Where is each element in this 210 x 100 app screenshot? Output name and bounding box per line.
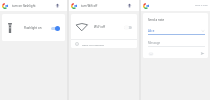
button[interactable]: Alice: [148, 29, 205, 33]
button[interactable]: Turn off: [51, 25, 59, 31]
button[interactable]: Flashlight on: [2, 14, 65, 41]
staticText: Flashlight on: [24, 26, 42, 30]
button[interactable]: Keyboard: [148, 51, 153, 56]
staticText: Alice: [148, 29, 155, 33]
button[interactable]: Wi-Fi off: [71, 14, 137, 39]
staticText: Wi-Fi off: [94, 25, 106, 29]
staticText: send a note: [195, 4, 208, 7]
button[interactable]: Turn on: [124, 24, 132, 30]
staticText: turn on flashlight: [12, 4, 53, 8]
button[interactable]: Open Wi-Fi settings: [71, 40, 137, 48]
staticText: turn Wifi off: [81, 4, 125, 8]
button[interactable]: turn on flashlight: [0, 0, 67, 11]
staticText: Open Wi-Fi settings: [82, 43, 104, 46]
staticText: Message: [148, 41, 161, 45]
staticText: Send a note: [148, 18, 165, 22]
button[interactable]: Send: [199, 50, 205, 56]
button[interactable]: turn Wifi off: [69, 0, 139, 11]
button[interactable]: Voice search: [53, 1, 62, 10]
button[interactable]: Voice search: [125, 1, 134, 10]
button[interactable]: send a note: [141, 0, 210, 11]
